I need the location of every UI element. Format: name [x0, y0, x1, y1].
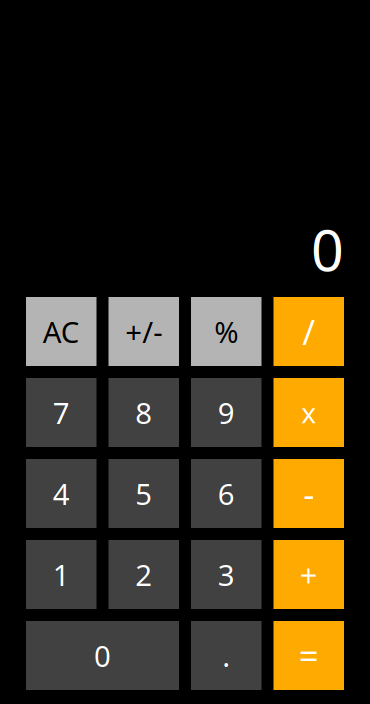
staticText: 0 — [94, 636, 111, 675]
button[interactable]: 4 — [26, 459, 96, 528]
button[interactable]: 5 — [108, 459, 179, 528]
button[interactable]: 6 — [191, 459, 261, 528]
staticText: + — [300, 554, 318, 595]
staticText: . — [222, 636, 230, 675]
staticText: +/- — [125, 312, 162, 351]
staticText: % — [214, 312, 238, 351]
staticText: 7 — [53, 393, 70, 432]
staticText: x — [301, 394, 316, 431]
button[interactable]: Multiply — [273, 378, 344, 447]
button[interactable]: Subtract — [273, 459, 344, 528]
button[interactable]: 0 — [26, 621, 179, 690]
staticText: 8 — [135, 393, 152, 432]
staticText: 2 — [135, 555, 152, 594]
button[interactable]: 9 — [191, 378, 261, 447]
button[interactable]: 1 — [26, 540, 96, 609]
staticText: = — [299, 632, 319, 678]
staticText: 0 — [311, 211, 344, 287]
button[interactable]: 2 — [108, 540, 179, 609]
staticText: 6 — [218, 474, 235, 513]
button[interactable]: 8 — [108, 378, 179, 447]
button[interactable]: 3 — [191, 540, 261, 609]
staticText: 5 — [135, 474, 152, 513]
button[interactable]: 7 — [26, 378, 96, 447]
staticText: 9 — [218, 393, 235, 432]
staticText: 4 — [53, 474, 70, 513]
button[interactable]: Percent — [191, 297, 261, 366]
staticText: / — [302, 308, 315, 354]
button[interactable]: Divide — [273, 297, 344, 366]
staticText: - — [303, 470, 314, 516]
button[interactable]: Add — [273, 540, 344, 609]
staticText: 3 — [218, 555, 235, 594]
button[interactable]: Clear — [26, 297, 96, 366]
button[interactable]: Decimal point — [191, 621, 261, 690]
button[interactable]: Equals — [273, 621, 344, 690]
staticText: 1 — [53, 555, 70, 594]
button[interactable]: Plus minus — [108, 297, 179, 366]
staticText: AC — [43, 312, 80, 351]
